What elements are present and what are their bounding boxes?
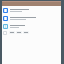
button[interactable]: Select: [3, 31, 7, 35]
button[interactable]: [16, 31, 22, 34]
other: Open item: [3, 8, 8, 13]
button[interactable]: Open item: [2, 23, 61, 29]
button[interactable]: Open item: [2, 15, 61, 21]
other: Open item: [3, 16, 8, 21]
button[interactable]: [2, 1, 61, 6]
button[interactable]: [23, 31, 29, 34]
other: Open item: [3, 24, 8, 29]
button[interactable]: [9, 31, 15, 34]
button[interactable]: Open item: [2, 7, 61, 13]
